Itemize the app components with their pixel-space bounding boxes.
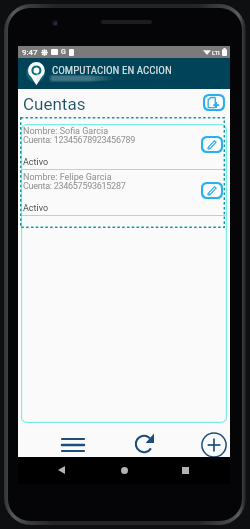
- staticText: 9:47: [22, 48, 38, 57]
- staticText: Cuentas: [23, 94, 86, 114]
- staticText: LTI: [212, 49, 220, 56]
- button[interactable]: Editar: [203, 184, 221, 197]
- button[interactable]: Agregar: [199, 430, 229, 460]
- button[interactable]: Home: [117, 463, 131, 477]
- button[interactable]: Agregar cuenta: [205, 96, 223, 109]
- button[interactable]: Recents: [178, 463, 192, 477]
- staticText: Cuenta: 234657593615287: [23, 181, 126, 192]
- button[interactable]: Menu: [56, 429, 89, 460]
- button[interactable]: Editar: [203, 138, 221, 151]
- staticText: Cuenta: 12345678923456789: [23, 135, 136, 146]
- staticText: Nombre: Felipe Garcia: [23, 172, 112, 183]
- button[interactable]: Nombre: Sofia Garcia: [21, 124, 227, 170]
- staticText: Activo: [23, 203, 49, 214]
- button[interactable]: Nombre: Felipe Garcia: [21, 170, 227, 216]
- staticText: COMPUTACION EN ACCION: [52, 64, 172, 77]
- staticText: Nombre: Sofia Garcia: [23, 126, 109, 137]
- staticText: Activo: [23, 157, 49, 168]
- button[interactable]: Back: [54, 463, 68, 477]
- staticText: G: [61, 48, 66, 56]
- button[interactable]: Actualizar: [129, 430, 158, 458]
